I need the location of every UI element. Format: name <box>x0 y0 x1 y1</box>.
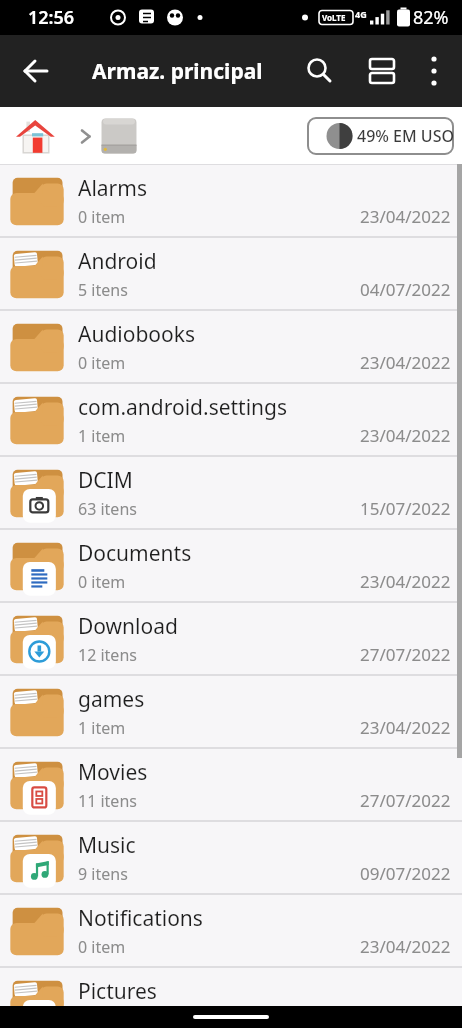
staticText: Notifications <box>78 904 203 933</box>
button[interactable]: Download <box>0 603 462 674</box>
button[interactable]: Alarms <box>0 165 462 236</box>
staticText: Music <box>78 831 136 860</box>
button[interactable] <box>12 47 60 95</box>
staticText: 15/07/2022 <box>360 497 451 520</box>
staticText: 4G <box>355 8 367 20</box>
staticText: com.android.settings <box>78 393 288 422</box>
staticText: 23/04/2022 <box>360 205 451 228</box>
button[interactable]: Pictures <box>0 968 462 1028</box>
staticText: 27/07/2022 <box>360 643 451 666</box>
staticText: VoLTE <box>322 12 346 23</box>
staticText: DCIM <box>78 466 133 495</box>
button[interactable] <box>414 51 454 91</box>
staticText: 0 item <box>78 352 126 374</box>
button[interactable]: Audiobooks <box>0 311 462 382</box>
button[interactable]: DCIM <box>0 457 462 528</box>
staticText: 82% <box>413 5 449 30</box>
staticText: 23/04/2022 <box>360 716 451 739</box>
staticText: 11 itens <box>78 790 137 812</box>
staticText: 23/04/2022 <box>360 424 451 447</box>
button[interactable] <box>358 47 406 95</box>
staticText: 1 item <box>78 717 126 739</box>
staticText: 0 item <box>78 936 126 958</box>
staticText: Audiobooks <box>78 320 196 349</box>
staticText: 0 item <box>78 206 126 228</box>
staticText: Alarms <box>78 174 147 203</box>
staticText: 1 item <box>78 425 126 447</box>
button[interactable] <box>100 117 138 155</box>
staticText: 9 itens <box>78 863 128 885</box>
button[interactable]: Movies <box>0 749 462 820</box>
button[interactable]: Documents <box>0 530 462 601</box>
staticText: 5 itens <box>78 279 128 301</box>
button[interactable] <box>296 47 344 95</box>
staticText: Android <box>78 247 157 276</box>
staticText: Download <box>78 612 178 641</box>
staticText: 12 itens <box>78 644 137 666</box>
staticText: 63 itens <box>78 498 137 520</box>
staticText: 04/07/2022 <box>360 278 451 301</box>
staticText: 12:56 <box>28 5 75 30</box>
staticText: Pictures <box>78 977 157 1006</box>
button[interactable]: com.android.settings <box>0 384 462 455</box>
staticText: 23/04/2022 <box>360 351 451 374</box>
staticText: 23/04/2022 <box>360 935 451 958</box>
staticText: 27/07/2022 <box>360 789 451 812</box>
staticText: Movies <box>78 758 148 787</box>
staticText: 23/04/2022 <box>360 570 451 593</box>
staticText: 09/07/2022 <box>360 862 451 885</box>
staticText: 49% EM USO <box>357 125 454 147</box>
button[interactable]: Music <box>0 822 462 893</box>
button[interactable]: Android <box>0 238 462 309</box>
staticText: Armaz. principal <box>92 57 263 86</box>
staticText: Documents <box>78 539 192 568</box>
button[interactable]: Notifications <box>0 895 462 966</box>
button[interactable] <box>16 116 56 156</box>
button[interactable]: games <box>0 676 462 747</box>
staticText: 0 item <box>78 571 126 593</box>
staticText: games <box>78 685 145 714</box>
button[interactable]: 49% EM USO <box>307 117 454 155</box>
